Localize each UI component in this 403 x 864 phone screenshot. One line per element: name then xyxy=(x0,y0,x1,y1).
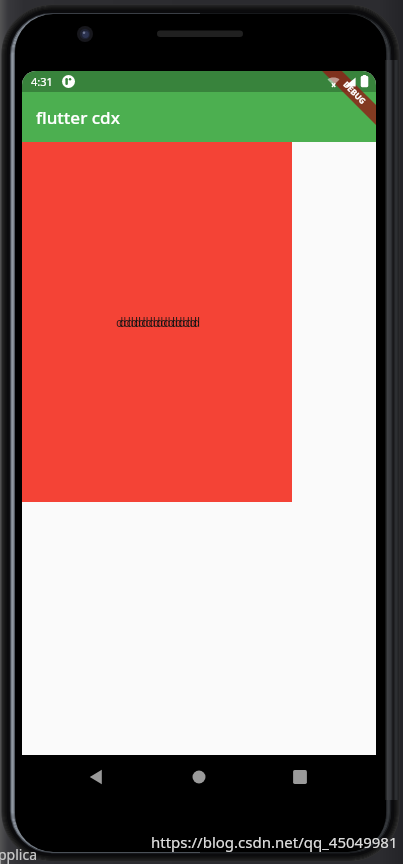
staticText: ddddddddddd xyxy=(119,314,201,330)
staticText: flutter cdx xyxy=(36,106,120,129)
staticText: DEBUG xyxy=(341,79,369,106)
staticText: https://blog.csdn.net/qq_45049981 xyxy=(151,832,398,852)
staticText: ddddddddddd xyxy=(116,314,198,330)
button[interactable]: Home xyxy=(177,755,221,799)
button[interactable]: Back xyxy=(74,755,118,799)
staticText: pplica xyxy=(0,845,38,864)
staticText: 4:31 xyxy=(31,74,53,89)
button[interactable]: Recent apps xyxy=(278,755,322,799)
